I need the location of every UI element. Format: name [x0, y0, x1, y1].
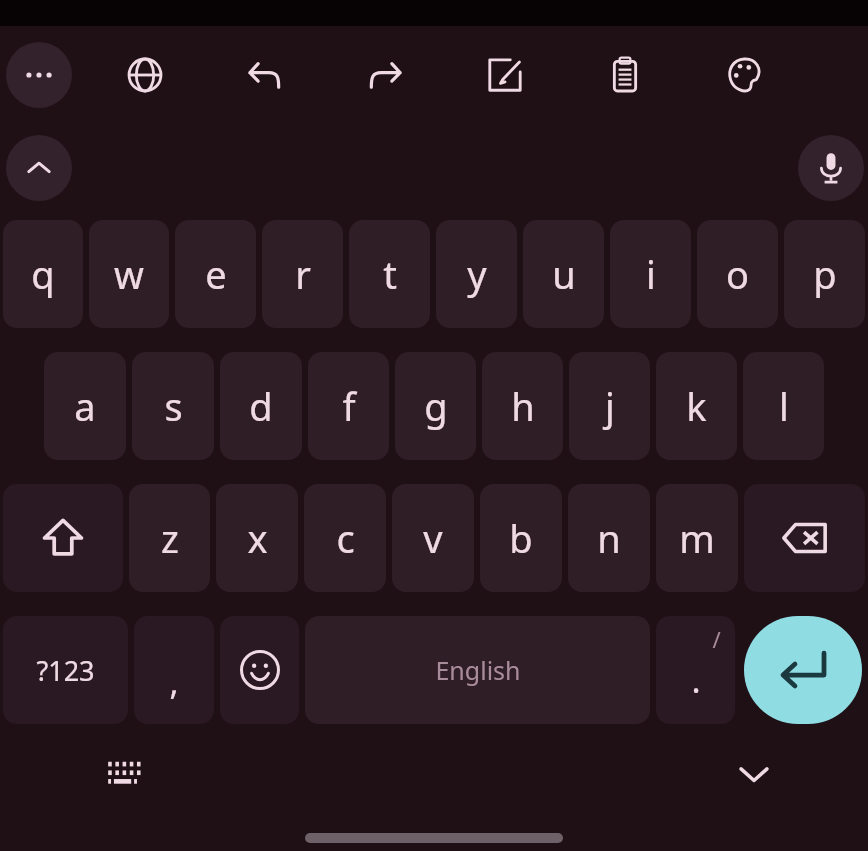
button[interactable]: ?123	[3, 616, 128, 724]
button[interactable]: s	[132, 352, 214, 460]
button[interactable]: English	[305, 616, 650, 724]
staticText: u	[552, 248, 576, 300]
staticText: y	[467, 248, 487, 300]
button[interactable]: k	[656, 352, 737, 460]
staticText: r	[295, 248, 311, 300]
button[interactable]: Backspace	[744, 484, 865, 592]
button[interactable]: w	[89, 220, 169, 328]
button[interactable]: Redo	[352, 42, 418, 108]
button[interactable]: Undo	[232, 42, 298, 108]
button[interactable]: p	[784, 220, 865, 328]
button[interactable]: o	[697, 220, 778, 328]
button[interactable]: j	[569, 352, 650, 460]
button[interactable]: Edit	[472, 42, 538, 108]
staticText: g	[424, 380, 448, 432]
button[interactable]: g	[395, 352, 476, 460]
staticText: o	[726, 248, 749, 300]
button[interactable]: i	[610, 220, 691, 328]
staticText: v	[423, 512, 443, 564]
button[interactable]: z	[129, 484, 210, 592]
button[interactable]: ,	[134, 616, 214, 724]
button[interactable]: Voice input	[798, 135, 864, 201]
button[interactable]: Switch keyboard	[96, 746, 152, 802]
staticText: n	[597, 512, 621, 564]
staticText: h	[511, 380, 535, 432]
button[interactable]: a	[44, 352, 126, 460]
button[interactable]: f	[308, 352, 389, 460]
staticText: c	[336, 512, 355, 564]
staticText: a	[74, 380, 96, 432]
button[interactable]: Clipboard	[592, 42, 658, 108]
button[interactable]: Shift	[3, 484, 123, 592]
staticText: b	[509, 512, 533, 564]
staticText: /	[712, 624, 721, 654]
button[interactable]: Emoji	[220, 616, 299, 724]
staticText: k	[686, 380, 707, 432]
button[interactable]: Hide keyboard	[726, 746, 782, 802]
staticText: w	[114, 248, 144, 300]
staticText: q	[31, 248, 55, 300]
staticText: z	[161, 512, 179, 564]
button[interactable]: u	[523, 220, 604, 328]
staticText: p	[813, 248, 837, 300]
button[interactable]: d	[220, 352, 302, 460]
button[interactable]: m	[656, 484, 738, 592]
button[interactable]: t	[349, 220, 430, 328]
staticText: ?123	[36, 652, 95, 689]
button[interactable]: x	[216, 484, 298, 592]
staticText: .	[691, 657, 701, 703]
button[interactable]: v	[392, 484, 474, 592]
button[interactable]: l	[743, 352, 824, 460]
button[interactable]: c	[304, 484, 386, 592]
button[interactable]: e	[175, 220, 256, 328]
button[interactable]: More options	[6, 42, 72, 108]
button[interactable]: Theme	[712, 42, 778, 108]
staticText: x	[247, 512, 268, 564]
button[interactable]: n	[568, 484, 650, 592]
button[interactable]: Expand suggestions	[6, 135, 72, 201]
staticText: t	[383, 248, 397, 300]
staticText: English	[435, 653, 521, 687]
button[interactable]: h	[482, 352, 563, 460]
staticText: s	[164, 380, 183, 432]
staticText: j	[605, 380, 615, 432]
staticText: i	[646, 248, 656, 300]
staticText: e	[205, 248, 227, 300]
button[interactable]: Language	[112, 42, 178, 108]
button[interactable]: b	[480, 484, 562, 592]
button[interactable]: Enter	[744, 616, 862, 724]
staticText: ,	[169, 659, 179, 705]
staticText: m	[679, 512, 715, 564]
button[interactable]: y	[436, 220, 517, 328]
staticText: d	[249, 380, 273, 432]
button[interactable]: r	[262, 220, 343, 328]
staticText: f	[342, 380, 356, 432]
button[interactable]: /	[656, 616, 735, 724]
button[interactable]: q	[3, 220, 83, 328]
staticText: l	[779, 380, 789, 432]
